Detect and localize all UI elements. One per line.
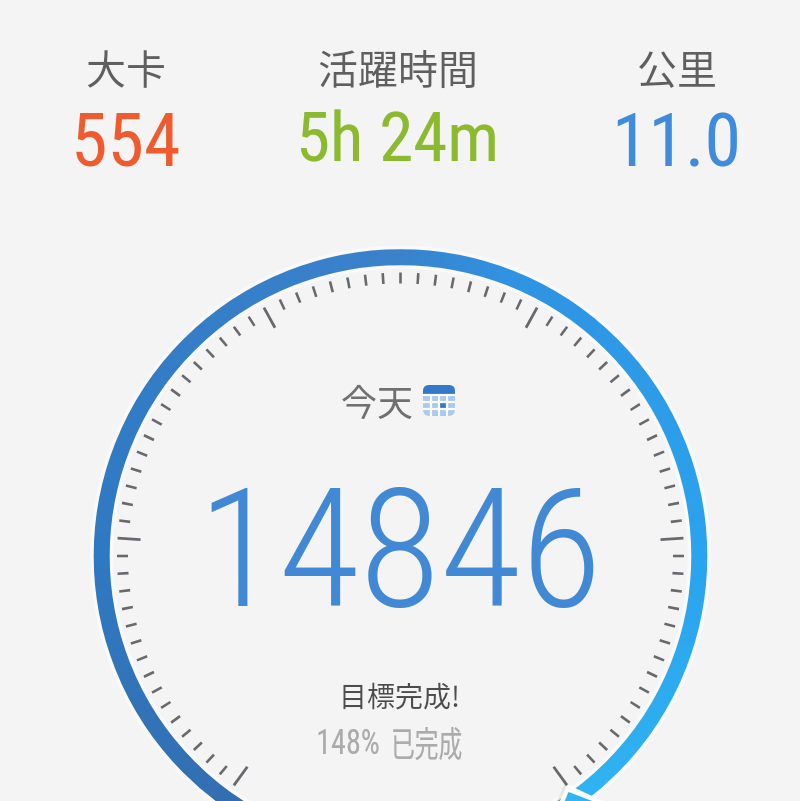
button[interactable]: 活躍時間 [248,37,548,171]
staticText: 11.0 [612,97,742,171]
staticText: 大卡 [86,38,166,96]
button[interactable]: 公里 [527,37,800,171]
staticText: 148% [316,722,380,763]
staticText: 554 [71,97,181,171]
button[interactable]: 大卡 [0,37,276,171]
button[interactable]: 今天 [341,374,455,426]
staticText: 14846 [198,452,602,632]
staticText: 5h 24m [296,97,500,171]
staticText: 已完成 [391,716,463,767]
staticText: 目標完成! [339,675,461,716]
staticText: 公里 [637,38,717,96]
staticText: 今天 [341,374,414,426]
staticText: 活躍時間 [318,38,478,96]
